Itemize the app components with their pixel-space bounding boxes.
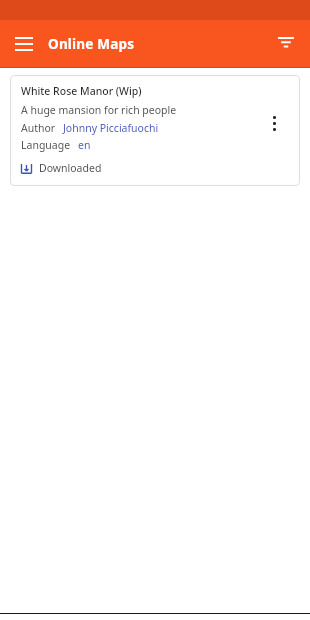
staticText: White Rose Manor (Wip) [21, 84, 142, 98]
staticText: Online Maps [48, 35, 135, 53]
staticText: en [78, 138, 91, 152]
button[interactable]: Downloaded [21, 161, 102, 175]
staticText: Downloaded [39, 161, 102, 175]
button[interactable]: en [78, 138, 91, 152]
button[interactable]: More options [262, 111, 286, 135]
staticText: Johnny Picciafuochi [63, 121, 159, 135]
button[interactable]: Filter [268, 26, 304, 62]
staticText: Author [21, 121, 56, 135]
staticText: Language [21, 138, 71, 152]
button[interactable]: Open navigation menu [6, 26, 42, 62]
staticText: A huge mansion for rich people [21, 103, 177, 117]
button[interactable]: White Rose Manor (Wip) [10, 75, 300, 186]
button[interactable]: Johnny Picciafuochi [63, 121, 159, 135]
